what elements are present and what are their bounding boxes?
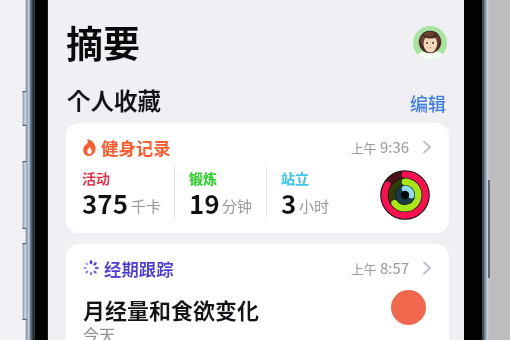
staticText: 375 [82, 184, 129, 222]
staticText: 个人收藏 [67, 83, 161, 117]
staticText: 健身记录 [101, 135, 171, 160]
staticText: 小时 [299, 195, 330, 217]
staticText: 19 [189, 184, 220, 222]
staticText: 活动 [82, 168, 110, 188]
staticText: 今天 [83, 322, 116, 340]
button[interactable]: 摘要 [66, 15, 140, 69]
staticText: 月经量和食欲变化 [83, 293, 260, 325]
button[interactable]: 健身记录 [66, 123, 449, 233]
staticText: 9:36 [380, 136, 410, 158]
staticText: 千卡 [131, 195, 162, 217]
button[interactable]: 个人收藏 [67, 83, 161, 117]
staticText: 8:57 [380, 257, 410, 279]
staticText: 上午 [351, 138, 377, 157]
staticText: 编辑 [410, 90, 446, 116]
staticText: 3 [281, 184, 297, 222]
button[interactable]: Profile [413, 26, 447, 60]
staticText: 锻炼 [189, 168, 217, 188]
staticText: 站立 [281, 168, 309, 188]
staticText: 分钟 [222, 195, 253, 217]
staticText: 上午 [351, 259, 377, 278]
button[interactable]: 编辑 [410, 90, 446, 116]
button[interactable]: 经期跟踪 [66, 244, 449, 340]
staticText: 经期跟踪 [104, 256, 174, 281]
staticText: 摘要 [66, 15, 140, 69]
